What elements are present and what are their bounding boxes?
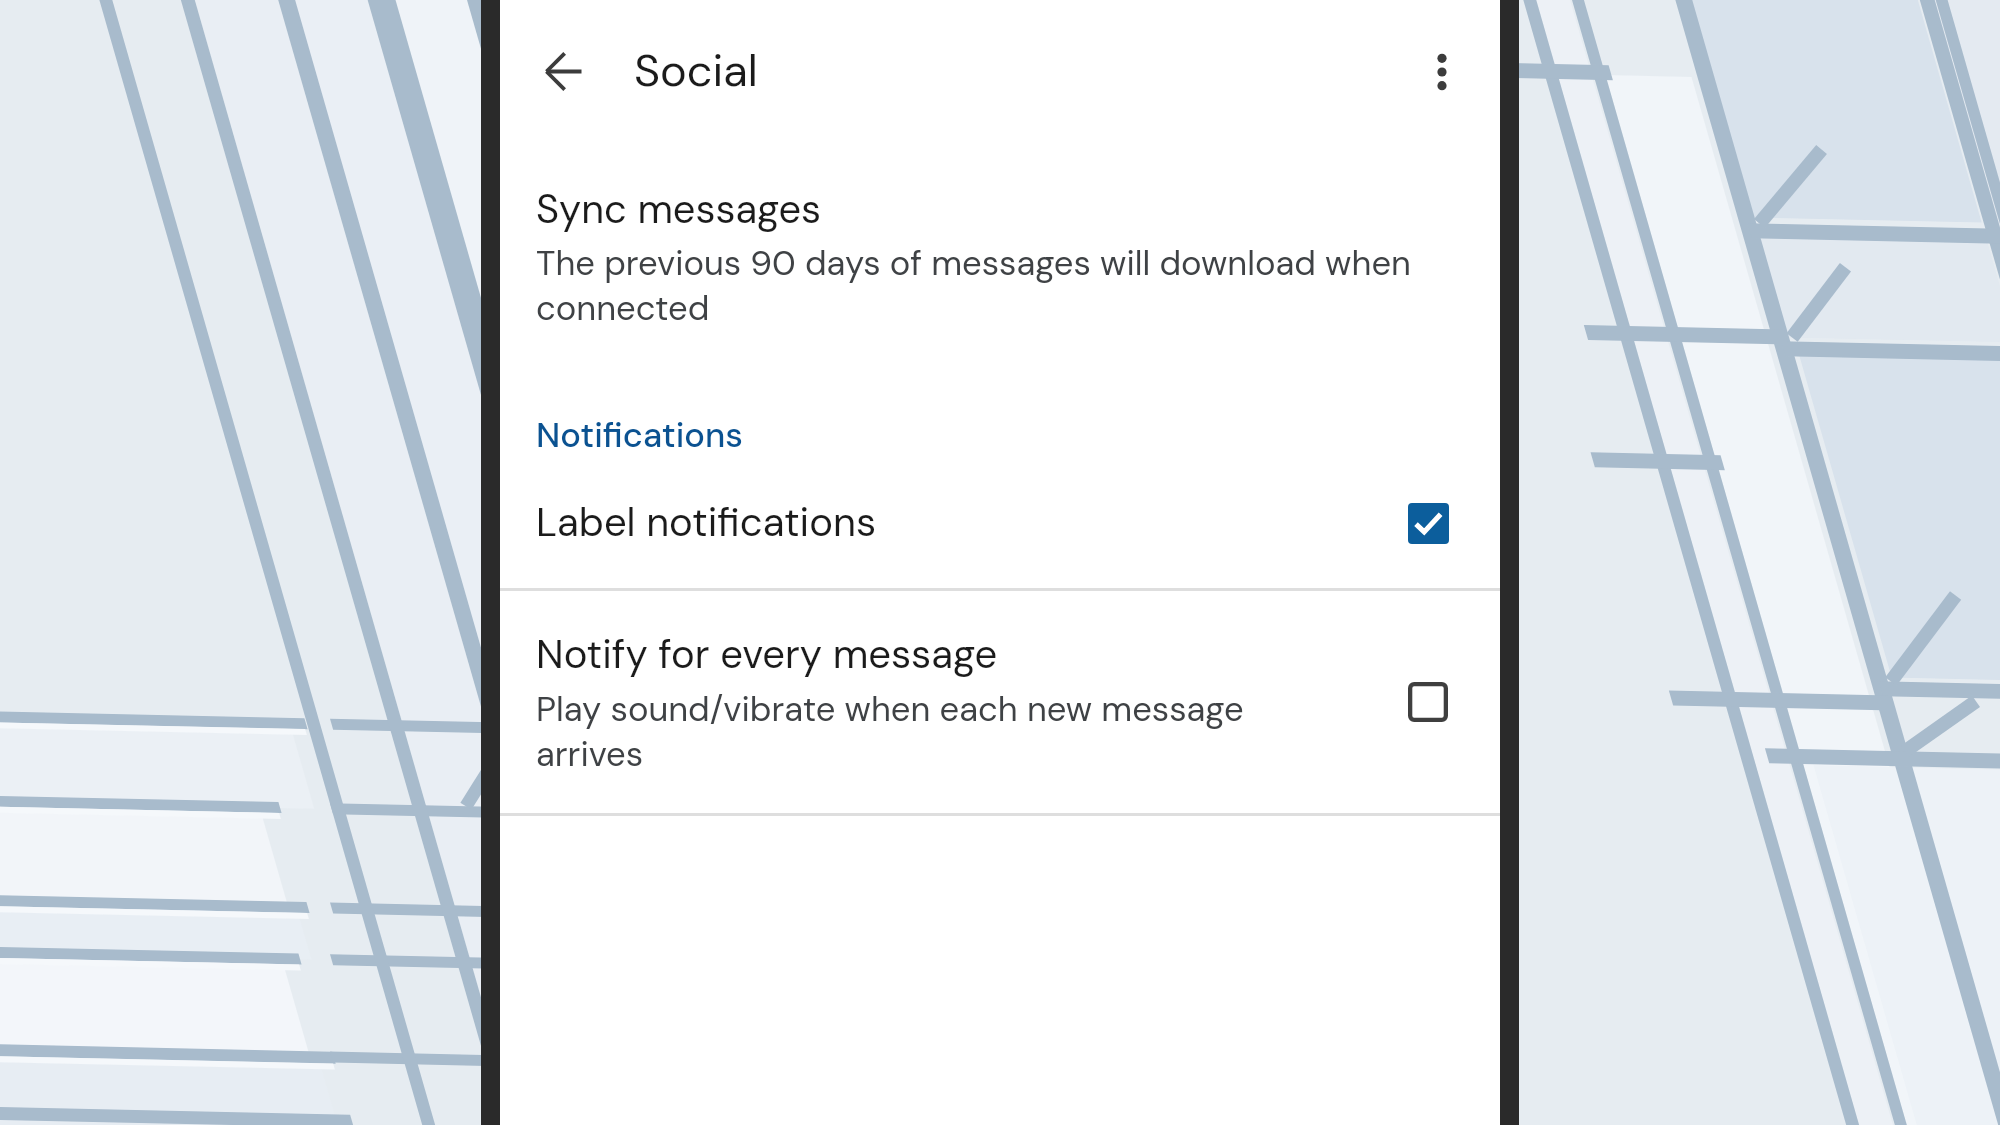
staticText: Label notifications xyxy=(536,496,1454,548)
staticText: Social xyxy=(634,41,758,100)
staticText: Notifications xyxy=(536,413,743,458)
staticText: The previous 90 days of messages will do… xyxy=(536,241,1431,331)
button[interactable]: Navigate up xyxy=(527,35,599,107)
staticText: Sync messages xyxy=(536,184,822,236)
button[interactable]: Notify for every message, off xyxy=(1387,661,1469,743)
button[interactable]: More options xyxy=(1406,36,1478,108)
staticText: Play sound/vibrate when each new message… xyxy=(536,687,1296,777)
button[interactable]: Label notifications xyxy=(500,468,1500,578)
staticText: Notify for every message xyxy=(536,628,998,680)
button[interactable]: Label notifications, on xyxy=(1387,482,1469,564)
button[interactable]: Notify for every message xyxy=(500,590,1500,814)
button[interactable]: Sync messages xyxy=(500,155,1500,345)
